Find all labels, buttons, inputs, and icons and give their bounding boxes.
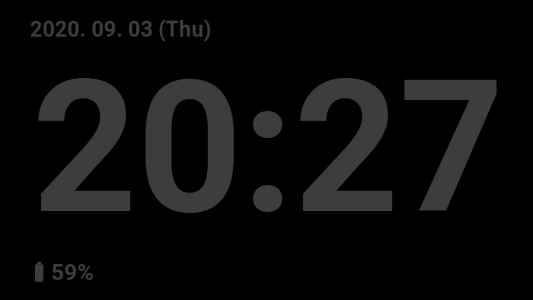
staticText: 20:27: [32, 41, 504, 256]
staticText: 2020. 09. 03 (Thu): [30, 17, 211, 42]
staticText: 59%: [51, 259, 94, 286]
button[interactable]: Clock, 20:27, Thursday September 3 2020,…: [0, 0, 533, 300]
